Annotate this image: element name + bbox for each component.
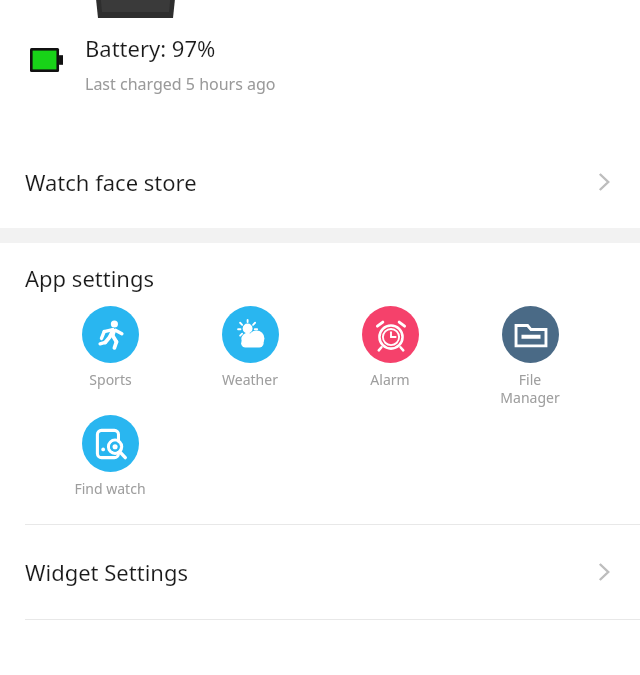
button[interactable]: Weather <box>213 306 287 389</box>
staticText: Sports <box>89 370 132 389</box>
staticText: Watch face store <box>25 167 197 197</box>
staticText: Alarm <box>370 370 410 389</box>
button[interactable]: File Manager <box>493 306 567 407</box>
button[interactable]: Watch face store <box>0 144 640 220</box>
staticText: Find watch <box>74 479 146 498</box>
staticText: File Manager <box>500 370 560 407</box>
button[interactable]: Widget Settings <box>0 525 640 619</box>
staticText: Last charged 5 hours ago <box>85 73 276 95</box>
staticText: Weather <box>222 370 278 389</box>
staticText: Widget Settings <box>25 557 188 587</box>
button[interactable]: Alarm <box>353 306 427 389</box>
staticText: App settings <box>25 263 155 293</box>
staticText: Battery: 97% <box>85 33 216 63</box>
button[interactable]: Find watch <box>73 415 147 498</box>
button[interactable]: Battery: 97% <box>0 19 640 144</box>
button[interactable]: Sports <box>73 306 147 389</box>
